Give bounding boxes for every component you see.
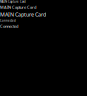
staticText: MAIN Capture Card [0,0,26,3]
staticText: MAIN Capture Card [0,4,36,10]
staticText: Connected [0,19,16,22]
staticText: MAIN Capture Card [0,11,46,18]
staticText: Connected [0,23,18,29]
